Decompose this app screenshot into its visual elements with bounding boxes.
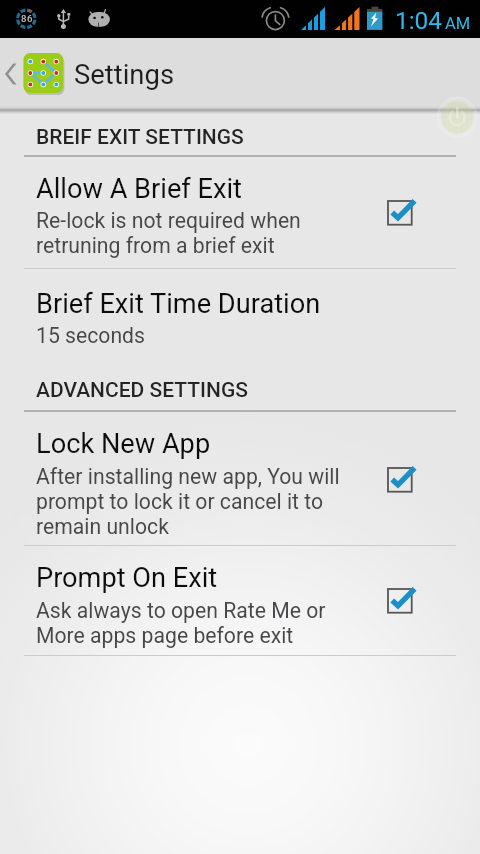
button[interactable]: Toggle setting (372, 579, 428, 623)
staticText: remain unlock (36, 514, 169, 539)
staticText: retruning from a brief exit (36, 233, 275, 258)
button[interactable]: Lock New App (0, 410, 480, 545)
button[interactable]: Brief Exit Time Duration (0, 268, 480, 370)
staticText: prompt to lock it or cancel it to (36, 489, 324, 514)
staticText: Prompt On Exit (36, 562, 218, 594)
staticText: Brief Exit Time Duration (36, 288, 321, 320)
staticText: 86 (21, 13, 33, 24)
staticText: BREIF EXIT SETTINGS (36, 125, 244, 150)
button[interactable]: Allow A Brief Exit (0, 155, 480, 268)
button[interactable]: Prompt On Exit (0, 545, 480, 655)
staticText: AM (445, 14, 471, 33)
staticText: After installing new app, You will (36, 464, 340, 489)
staticText: Lock New App (36, 428, 211, 460)
staticText: Settings (74, 59, 175, 91)
staticText: Ask always to open Rate Me or (36, 598, 326, 623)
staticText: 15 seconds (36, 323, 145, 348)
staticText: ADVANCED SETTINGS (36, 378, 248, 403)
staticText: Allow A Brief Exit (36, 173, 242, 205)
staticText: 1:04 (395, 6, 443, 35)
button[interactable]: Toggle setting (372, 191, 428, 235)
staticText: Re-lock is not required when (36, 208, 301, 233)
button[interactable]: Toggle setting (372, 458, 428, 502)
staticText: More apps page before exit (36, 623, 294, 648)
button[interactable]: Navigate up (0, 38, 70, 109)
